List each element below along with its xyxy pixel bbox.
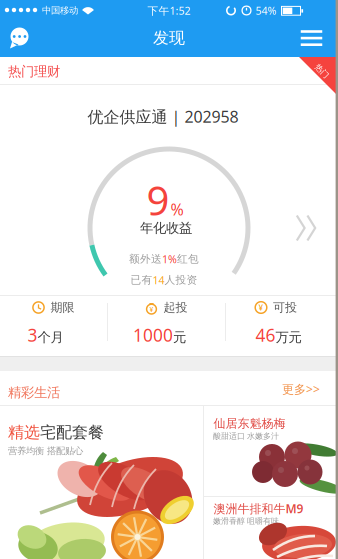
staticText: 年化收益 [140, 220, 192, 236]
staticText: % [170, 199, 183, 220]
staticText: 额外送 [129, 252, 162, 265]
staticText: 热门 [314, 66, 330, 76]
staticText: 发现 [153, 28, 185, 48]
staticText: 红包 [177, 252, 199, 265]
staticText: 优企供应通 | 202958 [87, 106, 238, 127]
staticText: 个月 [37, 329, 63, 345]
button[interactable]: 仙居东魁杨梅 [203, 405, 338, 497]
button[interactable]: 优企供应通 | 202958 [0, 84, 338, 295]
staticText: 中国移动 [42, 5, 78, 16]
staticText: 更多>> [282, 381, 320, 397]
staticText: 宅配套餐 [40, 423, 104, 442]
staticText: 仙居东魁杨梅 [213, 416, 285, 431]
staticText: 3 [27, 323, 37, 346]
staticText: 54% [255, 3, 276, 18]
staticText: ¥ [149, 305, 153, 314]
button[interactable]: 澳洲牛排和牛M9 [203, 497, 338, 559]
staticText: ¥ [258, 302, 263, 313]
staticText: 起投 [163, 300, 187, 315]
staticText: 万元 [275, 329, 301, 345]
staticText: 元 [173, 329, 186, 345]
staticText: 可投 [273, 300, 297, 315]
staticText: 营养均衡 搭配贴心 [8, 445, 83, 457]
staticText: 嫩滑香醇 咀嚼有味 [213, 516, 279, 526]
staticText: 14 [152, 273, 164, 287]
staticText: 精彩生活 [8, 384, 60, 401]
button[interactable]: 精选 [0, 405, 203, 559]
staticText: 46 [255, 323, 275, 346]
staticText: 热门理财 [8, 63, 60, 80]
staticText: 1% [162, 252, 177, 266]
staticText: 人投资 [164, 273, 197, 286]
button[interactable] [0, 20, 40, 57]
staticText: 精选 [8, 423, 40, 442]
button[interactable] [300, 20, 322, 57]
staticText: 9 [146, 173, 169, 226]
staticText: 1000 [133, 323, 173, 346]
staticText: 下午1:52 [147, 3, 190, 18]
staticText: 酸甜适口 水嫩多汁 [213, 431, 279, 441]
staticText: 已有 [130, 273, 152, 286]
button[interactable]: 更多>> [269, 377, 333, 401]
staticText: 期限 [50, 300, 74, 315]
button[interactable]: 期限 [0, 296, 338, 357]
staticText: 澳洲牛排和牛M9 [213, 500, 303, 516]
